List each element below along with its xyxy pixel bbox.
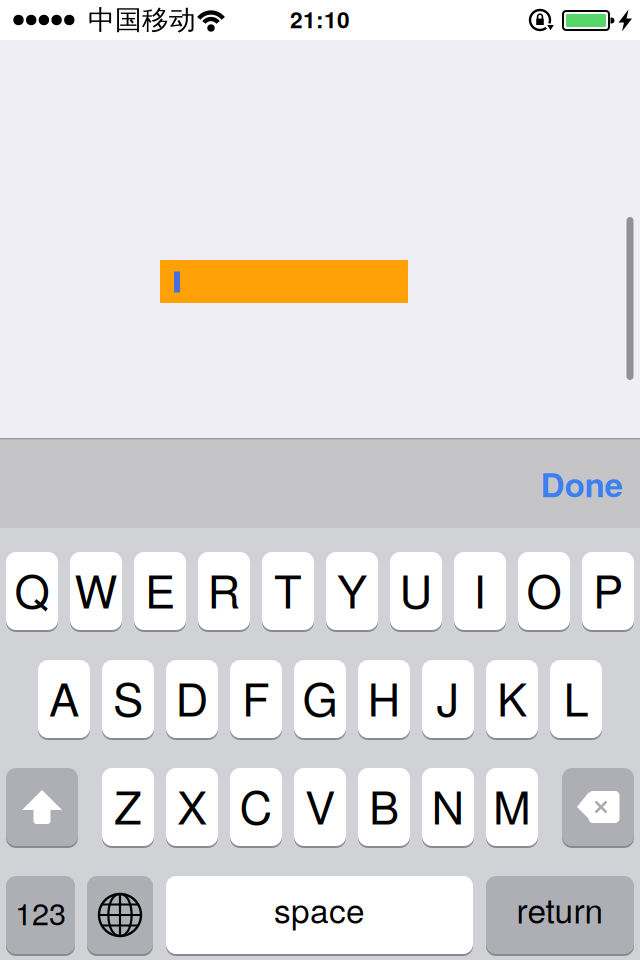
staticText: D xyxy=(175,664,208,729)
staticText: Done xyxy=(540,460,623,507)
staticText: B xyxy=(369,772,399,837)
staticText: X xyxy=(177,772,207,837)
button[interactable]: L xyxy=(550,660,602,738)
button[interactable]: O xyxy=(518,552,570,630)
staticText: R xyxy=(207,556,240,621)
button[interactable]: space xyxy=(166,876,473,954)
button[interactable]: T xyxy=(262,552,314,630)
staticText: Q xyxy=(14,556,49,621)
staticText: V xyxy=(305,772,335,837)
staticText: N xyxy=(431,772,464,837)
button[interactable]: Q xyxy=(6,552,58,630)
staticText: S xyxy=(113,664,143,729)
button[interactable]: Done xyxy=(522,438,640,528)
staticText: W xyxy=(74,556,117,621)
staticText: E xyxy=(145,556,175,621)
button[interactable]: C xyxy=(230,768,282,846)
button[interactable]: G xyxy=(294,660,346,738)
button[interactable]: Y xyxy=(326,552,378,630)
button[interactable]: V xyxy=(294,768,346,846)
staticText: 中国移动 xyxy=(88,4,196,36)
staticText: T xyxy=(274,556,302,621)
button[interactable]: W xyxy=(70,552,122,630)
staticText: M xyxy=(493,772,531,837)
button[interactable]: N xyxy=(422,768,474,846)
staticText: 123 xyxy=(15,890,66,934)
button[interactable]: S xyxy=(102,660,154,738)
staticText: C xyxy=(239,772,272,837)
staticText: H xyxy=(367,664,400,729)
staticText: J xyxy=(436,664,459,729)
button[interactable]: Shift xyxy=(6,768,78,846)
staticText: K xyxy=(497,664,527,729)
button[interactable]: X xyxy=(166,768,218,846)
staticText: I xyxy=(473,556,486,621)
button[interactable]: 123 xyxy=(6,876,75,954)
button[interactable]: A xyxy=(38,660,90,738)
staticText: 21:10 xyxy=(290,3,350,35)
button[interactable]: R xyxy=(198,552,250,630)
button[interactable]: F xyxy=(230,660,282,738)
staticText: P xyxy=(593,556,623,621)
button[interactable]: M xyxy=(486,768,538,846)
staticText: G xyxy=(302,664,337,729)
staticText: U xyxy=(399,556,432,621)
staticText: O xyxy=(526,556,561,621)
button[interactable]: B xyxy=(358,768,410,846)
button[interactable]: Next keyboard xyxy=(87,876,153,954)
button[interactable]: D xyxy=(166,660,218,738)
staticText: A xyxy=(49,664,79,729)
button[interactable]: J xyxy=(422,660,474,738)
button[interactable]: K xyxy=(486,660,538,738)
staticText: space xyxy=(274,885,365,933)
button[interactable]: E xyxy=(134,552,186,630)
button[interactable]: return xyxy=(486,876,634,954)
button[interactable]: U xyxy=(390,552,442,630)
button[interactable]: P xyxy=(582,552,634,630)
staticText: Z xyxy=(114,772,142,837)
staticText: Y xyxy=(337,556,367,621)
button[interactable]: Z xyxy=(102,768,154,846)
staticText: return xyxy=(516,885,603,933)
button[interactable]: Delete xyxy=(562,768,634,846)
staticText: F xyxy=(242,664,270,729)
staticText: L xyxy=(563,664,588,729)
button[interactable]: I xyxy=(454,552,506,630)
button[interactable]: H xyxy=(358,660,410,738)
